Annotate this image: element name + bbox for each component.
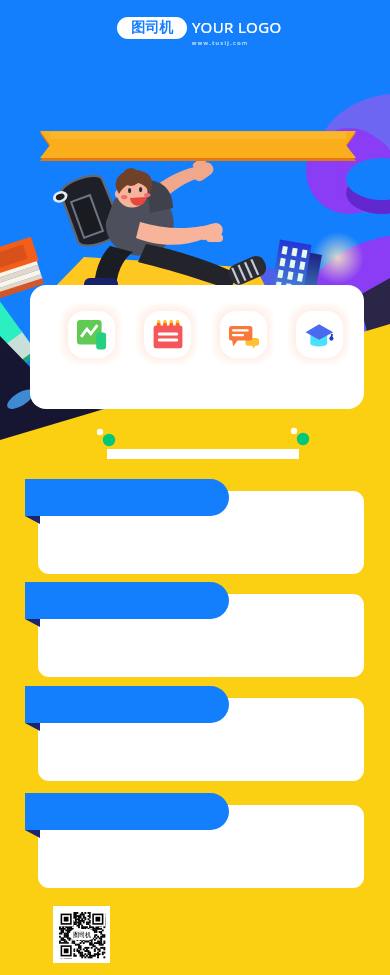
button[interactable] xyxy=(38,491,364,574)
button[interactable] xyxy=(38,805,364,888)
button[interactable] xyxy=(38,594,364,677)
staticText: YOUR LOGO xyxy=(192,17,282,37)
button[interactable]: QR code xyxy=(53,906,110,963)
staticText: w w w . t u s i j . c o m xyxy=(192,39,248,46)
button[interactable] xyxy=(25,479,229,516)
button[interactable]: 图司机 xyxy=(117,17,187,39)
button[interactable] xyxy=(25,582,229,619)
button[interactable]: Messages xyxy=(212,303,274,365)
staticText: 图司机 xyxy=(131,19,173,37)
button[interactable] xyxy=(38,698,364,781)
button[interactable]: Calendar xyxy=(136,303,198,365)
button[interactable] xyxy=(25,686,229,723)
button[interactable]: Education xyxy=(288,303,350,365)
button[interactable]: Statistics xyxy=(60,303,122,365)
staticText: 图司机 xyxy=(73,931,91,939)
button[interactable] xyxy=(25,793,229,830)
